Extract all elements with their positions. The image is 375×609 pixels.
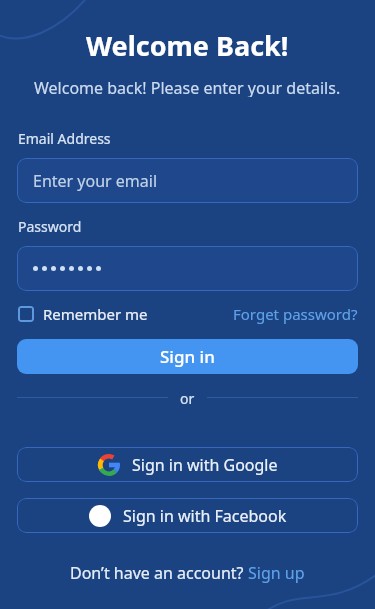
staticText: or — [180, 389, 195, 406]
staticText: Password — [18, 217, 82, 234]
button[interactable]: Forget password? — [233, 304, 358, 324]
staticText: Welcome Back! — [86, 27, 289, 61]
button[interactable]: Sign up — [248, 562, 305, 584]
staticText: Sign in with Google — [132, 454, 278, 476]
button[interactable]: Enter your email — [17, 158, 358, 203]
staticText: Remember me — [43, 304, 148, 324]
staticText: Sign up — [248, 562, 305, 584]
staticText: Email Address — [18, 129, 111, 146]
staticText: Don’t have an account? — [70, 562, 248, 584]
button[interactable]: Remember me — [18, 304, 148, 324]
staticText: Welcome back! Please enter your details. — [34, 77, 341, 97]
button[interactable]: Sign in — [17, 339, 358, 374]
staticText: Sign in with Facebook — [123, 505, 287, 527]
staticText: Sign in — [160, 345, 215, 368]
button[interactable] — [17, 246, 358, 291]
button[interactable]: Sign in with Facebook — [17, 498, 358, 533]
staticText: Forget password? — [233, 304, 358, 324]
button[interactable]: Sign in with Google — [17, 447, 358, 482]
staticText: Enter your email — [33, 170, 158, 192]
